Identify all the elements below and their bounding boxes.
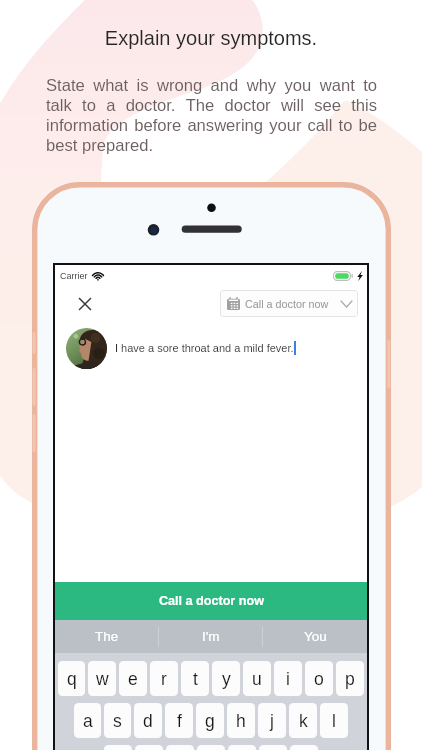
- staticText: Carrier: [60, 271, 88, 281]
- button[interactable]: Call a doctor now: [220, 290, 358, 317]
- staticText: State what is wrong and why you want to …: [46, 76, 377, 155]
- button[interactable]: l: [320, 703, 348, 738]
- button[interactable]: u: [243, 661, 271, 696]
- button[interactable]: g: [196, 703, 224, 738]
- button[interactable]: Call a doctor now: [55, 582, 367, 620]
- button[interactable]: o: [305, 661, 333, 696]
- staticText: Call a doctor now: [159, 594, 264, 608]
- button[interactable]: w: [88, 661, 116, 696]
- button[interactable]: x: [135, 745, 163, 750]
- staticText: e: [128, 669, 138, 689]
- button[interactable]: v: [197, 745, 225, 750]
- staticText: f: [177, 711, 182, 731]
- button[interactable]: You: [263, 620, 367, 653]
- button[interactable]: i: [274, 661, 302, 696]
- staticText: p: [345, 669, 355, 689]
- staticText: k: [299, 711, 308, 731]
- staticText: i: [286, 669, 290, 689]
- button[interactable]: c: [166, 745, 194, 750]
- staticText: You: [304, 629, 327, 644]
- staticText: l: [332, 711, 336, 731]
- button[interactable]: e: [119, 661, 147, 696]
- button[interactable]: a: [74, 703, 101, 738]
- button[interactable]: s: [104, 703, 131, 738]
- button[interactable]: t: [181, 661, 209, 696]
- staticText: a: [83, 711, 93, 731]
- button[interactable]: j: [258, 703, 286, 738]
- staticText: Call a doctor now: [245, 298, 329, 310]
- staticText: s: [113, 711, 122, 731]
- staticText: d: [143, 711, 153, 731]
- staticText: r: [161, 669, 167, 689]
- staticText: w: [96, 669, 109, 689]
- button[interactable]: z: [104, 745, 132, 750]
- staticText: y: [222, 669, 231, 689]
- button[interactable]: m: [290, 745, 318, 750]
- button[interactable]: h: [227, 703, 255, 738]
- button[interactable]: r: [150, 661, 178, 696]
- staticText: q: [67, 669, 77, 689]
- staticText: Explain your symptoms.: [0, 27, 422, 49]
- button[interactable]: I'm: [159, 620, 263, 653]
- button[interactable]: q: [58, 661, 85, 696]
- button[interactable]: f: [165, 703, 193, 738]
- staticText: I'm: [202, 629, 220, 644]
- staticText: The: [95, 629, 119, 644]
- button[interactable]: b: [228, 745, 256, 750]
- button[interactable]: The: [55, 620, 159, 653]
- staticText: I have a sore throat and a mild fever.: [115, 342, 294, 354]
- staticText: g: [205, 711, 215, 731]
- button[interactable]: Close: [72, 291, 98, 317]
- staticText: h: [236, 711, 246, 731]
- button[interactable]: k: [289, 703, 317, 738]
- staticText: t: [193, 669, 198, 689]
- button[interactable]: y: [212, 661, 240, 696]
- staticText: u: [252, 669, 262, 689]
- button[interactable]: d: [134, 703, 162, 738]
- button[interactable]: n: [259, 745, 287, 750]
- staticText: j: [270, 711, 274, 731]
- staticText: o: [314, 669, 324, 689]
- button[interactable]: p: [336, 661, 364, 696]
